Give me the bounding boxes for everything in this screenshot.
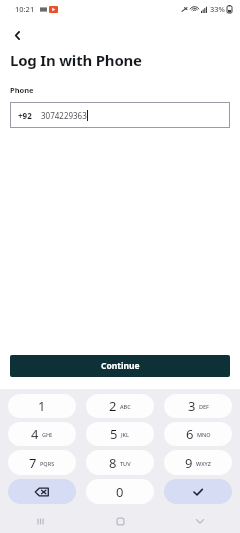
button[interactable]: Backspace — [8, 479, 76, 504]
staticText: GHI — [42, 431, 53, 438]
staticText: 4 — [31, 425, 39, 443]
staticText: JKL — [121, 431, 130, 438]
button[interactable]: 8 — [86, 450, 154, 475]
staticText: 33% — [210, 4, 225, 14]
staticText: 9 — [185, 454, 193, 472]
staticText: PQRS — [40, 460, 55, 467]
button[interactable]: Back — [186, 509, 214, 533]
staticText: 8 — [109, 454, 117, 472]
button[interactable]: 9 — [164, 450, 232, 475]
staticText: TUV — [120, 460, 131, 467]
button[interactable]: Home — [106, 509, 134, 533]
button[interactable]: 4 — [8, 422, 76, 446]
button[interactable]: 1 — [8, 394, 76, 418]
staticText: 6 — [186, 425, 194, 443]
staticText: 2 — [109, 397, 117, 415]
button[interactable]: 2 — [86, 394, 154, 418]
button[interactable]: 0 — [86, 479, 154, 504]
staticText: 1 — [38, 397, 46, 415]
button[interactable]: +92 — [10, 102, 230, 128]
staticText: 5 — [110, 425, 118, 443]
button[interactable]: 3 — [164, 394, 232, 418]
button[interactable]: Enter — [164, 479, 232, 504]
staticText: Log In with Phone — [10, 50, 142, 70]
button[interactable]: Continue — [10, 355, 230, 377]
staticText: 0 — [116, 483, 124, 501]
staticText: 3 — [188, 397, 196, 415]
staticText: Continue — [101, 360, 140, 372]
staticText: ABC — [120, 403, 131, 410]
staticText: 10:21 — [15, 4, 35, 14]
button[interactable]: 6 — [164, 422, 232, 446]
button[interactable]: Recents — [26, 509, 54, 533]
staticText: DEF — [199, 403, 209, 410]
staticText: +92 — [18, 110, 32, 121]
staticText: MNO — [197, 431, 211, 438]
staticText: Phone — [10, 85, 34, 95]
staticText: WXYZ — [196, 460, 211, 467]
staticText: 3074229363 — [41, 110, 87, 121]
button[interactable]: 7 — [8, 450, 76, 475]
button[interactable]: Back — [6, 24, 28, 46]
button[interactable]: 5 — [86, 422, 154, 446]
staticText: 7 — [29, 454, 37, 472]
